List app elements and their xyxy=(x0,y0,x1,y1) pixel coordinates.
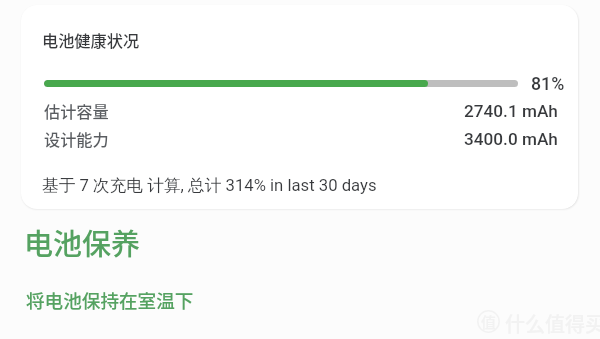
staticText: 3400.0 mAh xyxy=(464,129,558,149)
button[interactable] xyxy=(21,5,578,209)
staticText: 2740.1 mAh xyxy=(464,101,558,121)
staticText: 估计容量 xyxy=(44,99,109,122)
staticText: 电池保养 xyxy=(24,221,141,263)
staticText: 电池健康状况 xyxy=(42,28,140,51)
staticText: 值 xyxy=(481,311,497,333)
staticText: 81% xyxy=(531,73,565,94)
staticText: 什么值得买 xyxy=(505,309,600,338)
staticText: 设计能力 xyxy=(44,127,109,150)
staticText: 基于 7 次充电 计算, 总计 314% in last 30 days xyxy=(42,175,377,196)
other: Watermark xyxy=(477,310,500,333)
other: Battery health 81 percent xyxy=(44,80,518,87)
button[interactable]: 将电池保持在室温下 xyxy=(26,286,194,313)
